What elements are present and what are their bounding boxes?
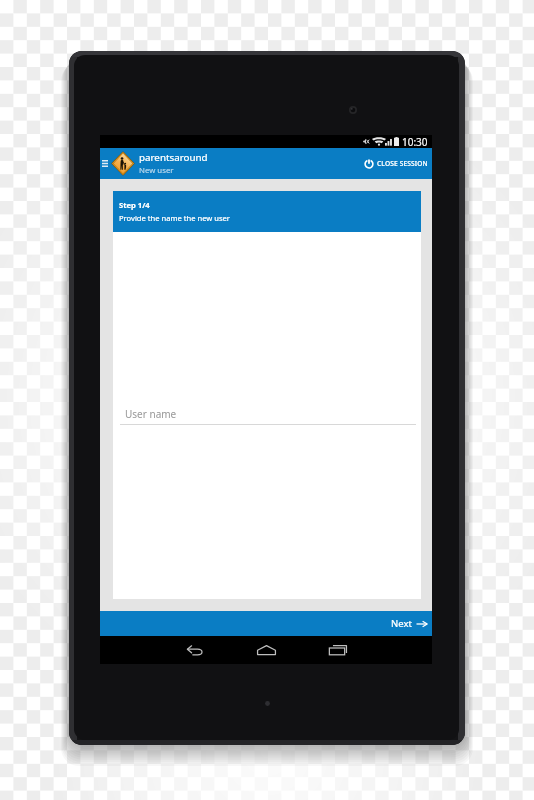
staticText: New user <box>139 165 174 176</box>
staticText: CLOSE SESSION <box>377 159 428 168</box>
button[interactable]: CLOSE SESSION <box>364 148 432 179</box>
staticText: Step 1/4 <box>119 200 150 210</box>
button[interactable]: Open navigation menu <box>100 148 110 179</box>
staticText: Provide the name the new user <box>119 213 230 223</box>
button[interactable]: Next <box>100 611 432 636</box>
button[interactable]: Recent apps <box>302 636 373 664</box>
button[interactable]: Back <box>160 636 231 664</box>
button[interactable]: User name <box>113 407 421 425</box>
staticText: Next <box>391 617 412 630</box>
button[interactable]: Home <box>231 636 302 664</box>
staticText: User name <box>125 407 177 421</box>
staticText: 10:30 <box>402 135 428 148</box>
staticText: parentsaround <box>139 151 208 164</box>
